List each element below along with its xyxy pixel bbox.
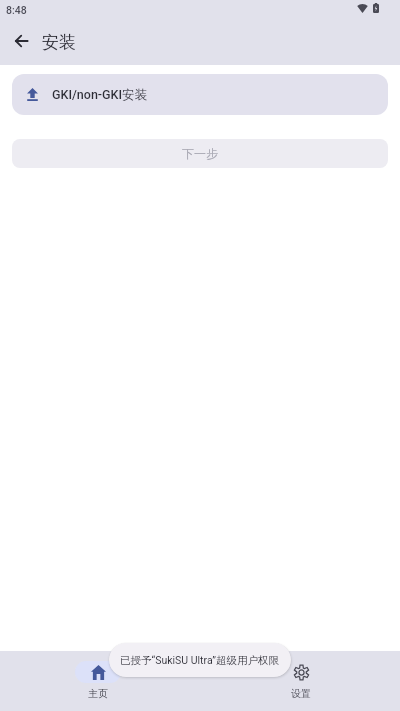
staticText: GKI/non-GKI安装 [52,87,148,103]
staticText: 下一步 [182,146,218,161]
button[interactable]: 下一步 [12,139,388,168]
staticText: 已授予“SukiSU Ultra”超级用户权限 [120,654,280,667]
staticText: 8:48 [6,4,27,16]
button[interactable]: Back [5,25,37,57]
button[interactable]: GKI/non-GKI安装 [12,74,388,115]
staticText: 设置 [291,688,311,700]
staticText: 安装 [42,32,76,53]
button[interactable]: 设置 [271,651,331,711]
staticText: 主页 [88,688,108,700]
button[interactable]: 主页 [68,651,128,711]
